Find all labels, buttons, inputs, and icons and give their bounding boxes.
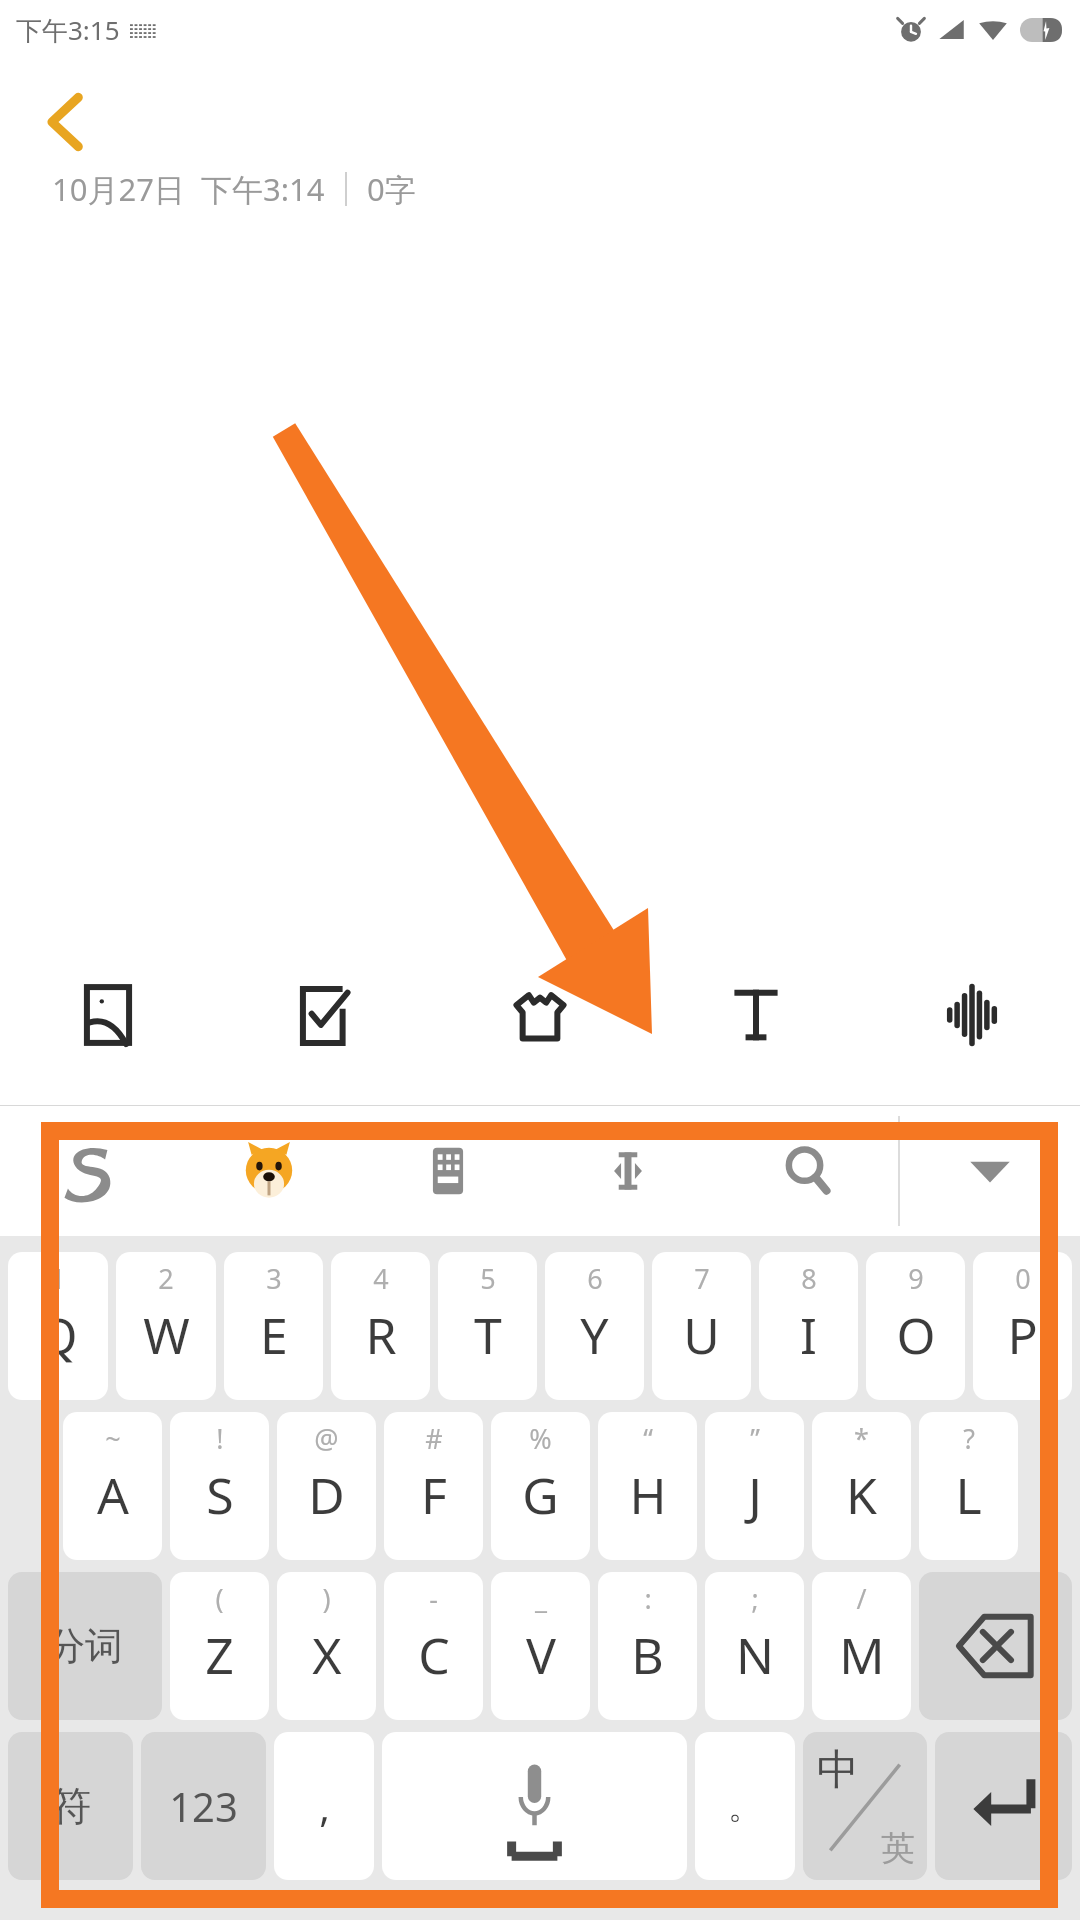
staticText: S (206, 1461, 234, 1529)
staticText: 3 (266, 1260, 282, 1297)
staticText: 分词 (47, 1622, 123, 1670)
staticText: ! (216, 1420, 224, 1457)
button[interactable]: ; (705, 1572, 804, 1720)
button[interactable]: , (274, 1732, 374, 1880)
staticText: 0字 (367, 168, 416, 210)
button[interactable]: 9 (866, 1252, 965, 1400)
button[interactable]: Search (718, 1106, 898, 1236)
button[interactable]: Collapse keyboard (900, 1106, 1080, 1236)
button[interactable]: Back (26, 82, 106, 162)
staticText: 10月27日 下午3:14 (52, 168, 325, 210)
button[interactable]: ! (170, 1412, 269, 1560)
staticText: ( (215, 1580, 224, 1617)
button[interactable]: Keyboard layout (358, 1106, 538, 1236)
staticText: Z (205, 1621, 234, 1689)
button[interactable]: : (598, 1572, 697, 1720)
button[interactable]: / (812, 1572, 911, 1720)
staticText: F (421, 1461, 447, 1529)
staticText: : (644, 1580, 652, 1617)
button[interactable]: @ (277, 1412, 376, 1560)
staticText: U (683, 1301, 720, 1369)
staticText: T (474, 1301, 502, 1369)
button[interactable]: # (384, 1412, 483, 1560)
button[interactable]: 符 (8, 1732, 133, 1880)
button[interactable]: ~ (63, 1412, 162, 1560)
staticText: D (308, 1461, 345, 1529)
button[interactable]: 8 (759, 1252, 858, 1400)
staticText: _ (535, 1580, 547, 1617)
staticText: % (529, 1420, 552, 1457)
button[interactable]: Style (432, 925, 648, 1105)
staticText: 1 (50, 1260, 66, 1297)
staticText: ? (963, 1420, 975, 1457)
staticText: - (429, 1580, 438, 1617)
button[interactable]: 4 (331, 1252, 430, 1400)
staticText: E (260, 1301, 288, 1369)
button[interactable]: 2 (116, 1252, 216, 1400)
staticText: # (425, 1420, 443, 1457)
button[interactable]: 6 (545, 1252, 644, 1400)
button[interactable]: Checklist (216, 925, 432, 1105)
button[interactable]: 分词 (8, 1572, 162, 1720)
staticText: 中 (817, 1744, 859, 1797)
button[interactable]: Voice (864, 925, 1080, 1105)
staticText: R (365, 1301, 397, 1369)
staticText: , (319, 1779, 330, 1833)
staticText: 。 (728, 1785, 762, 1828)
button[interactable]: 5 (438, 1252, 537, 1400)
staticText: G (522, 1461, 559, 1529)
staticText: B (631, 1621, 664, 1689)
staticText: L (955, 1461, 982, 1529)
button[interactable]: 123 (141, 1732, 266, 1880)
staticText: M (839, 1621, 885, 1689)
button[interactable]: 3 (224, 1252, 323, 1400)
staticText: P (1007, 1301, 1038, 1369)
button[interactable]: * (812, 1412, 911, 1560)
button[interactable]: Cursor move (538, 1106, 718, 1236)
button[interactable]: Enter (935, 1732, 1072, 1880)
staticText: J (748, 1461, 762, 1529)
button[interactable]: - (384, 1572, 483, 1720)
staticText: 符 (51, 1781, 91, 1831)
staticText: “ (643, 1420, 653, 1457)
staticText: Y (580, 1301, 609, 1369)
staticText: ~ (105, 1420, 121, 1457)
staticText: 5 (480, 1260, 496, 1297)
button[interactable]: Input method logo (0, 1106, 179, 1236)
button[interactable]: Chinese English toggle (803, 1732, 927, 1880)
button[interactable]: ” (705, 1412, 804, 1560)
button[interactable]: 0 (973, 1252, 1072, 1400)
staticText: 6 (587, 1260, 603, 1297)
staticText: V (526, 1621, 556, 1689)
button[interactable]: _ (491, 1572, 590, 1720)
button[interactable]: Space (382, 1732, 687, 1880)
staticText: @ (314, 1420, 339, 1457)
button[interactable]: Delete (919, 1572, 1072, 1720)
button[interactable]: 1 (8, 1252, 108, 1400)
button[interactable]: ) (277, 1572, 376, 1720)
staticText: 0 (1015, 1260, 1031, 1297)
button[interactable]: 。 (695, 1732, 795, 1880)
staticText: 7 (694, 1260, 710, 1297)
button[interactable]: Text format (648, 925, 864, 1105)
staticText: I (800, 1301, 817, 1369)
button[interactable]: “ (598, 1412, 697, 1560)
staticText: A (97, 1461, 129, 1529)
button[interactable]: 7 (652, 1252, 751, 1400)
staticText: ” (750, 1420, 760, 1457)
staticText: H (629, 1461, 667, 1529)
staticText: 2 (158, 1260, 174, 1297)
button[interactable]: % (491, 1412, 590, 1560)
staticText: 4 (373, 1260, 389, 1297)
staticText: 下午3:15 (16, 12, 120, 48)
staticText: W (143, 1301, 190, 1369)
button[interactable]: ? (919, 1412, 1018, 1560)
staticText: C (418, 1621, 450, 1689)
staticText: / (856, 1580, 867, 1617)
button[interactable]: Emoji (179, 1106, 358, 1236)
button[interactable]: Insert image (0, 925, 216, 1105)
staticText: 9 (908, 1260, 924, 1297)
button[interactable]: ( (170, 1572, 269, 1720)
staticText: 8 (801, 1260, 817, 1297)
staticText: N (736, 1621, 774, 1689)
